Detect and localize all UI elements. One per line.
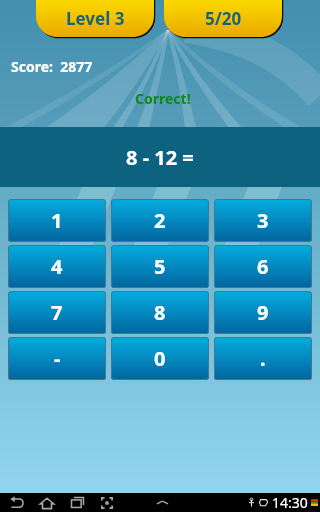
staticText: Score: 2877 (11, 57, 93, 76)
staticText: 1 (51, 207, 63, 234)
button[interactable]: 4 (8, 245, 106, 288)
button[interactable]: 7 (8, 291, 106, 334)
staticText: 9 (257, 299, 269, 326)
staticText: 4 (51, 253, 63, 280)
button[interactable]: 5/20 (164, 0, 282, 37)
staticText: - (54, 345, 61, 372)
staticText: 3 (257, 207, 269, 234)
button[interactable]: Recent apps (64, 493, 90, 512)
staticText: 14:30 (272, 493, 308, 512)
button[interactable]: 3 (214, 199, 312, 242)
button[interactable]: 9 (214, 291, 312, 334)
staticText: 7 (51, 299, 63, 326)
staticText: . (260, 345, 266, 372)
staticText: Correct! (135, 89, 191, 108)
button[interactable]: 6 (214, 245, 312, 288)
staticText: 0 (154, 345, 166, 372)
button[interactable]: Back (4, 493, 30, 512)
button[interactable]: Screenshot (94, 493, 120, 512)
button[interactable]: Home (34, 493, 60, 512)
button[interactable]: Level 3 (36, 0, 154, 37)
button[interactable]: 0 (111, 337, 209, 380)
staticText: 2 (154, 207, 166, 234)
button[interactable]: 5 (111, 245, 209, 288)
staticText: 8 (154, 299, 166, 326)
staticText: 6 (257, 253, 269, 280)
staticText: 5/20 (205, 7, 242, 30)
staticText: 5 (154, 253, 166, 280)
button[interactable]: Expand status bar (150, 493, 174, 512)
button[interactable]: - (8, 337, 106, 380)
button[interactable]: . (214, 337, 312, 380)
button[interactable]: 2 (111, 199, 209, 242)
button[interactable]: 8 (111, 291, 209, 334)
staticText: Level 3 (66, 7, 125, 30)
button[interactable]: 1 (8, 199, 106, 242)
staticText: 8 - 12 = (126, 144, 194, 171)
